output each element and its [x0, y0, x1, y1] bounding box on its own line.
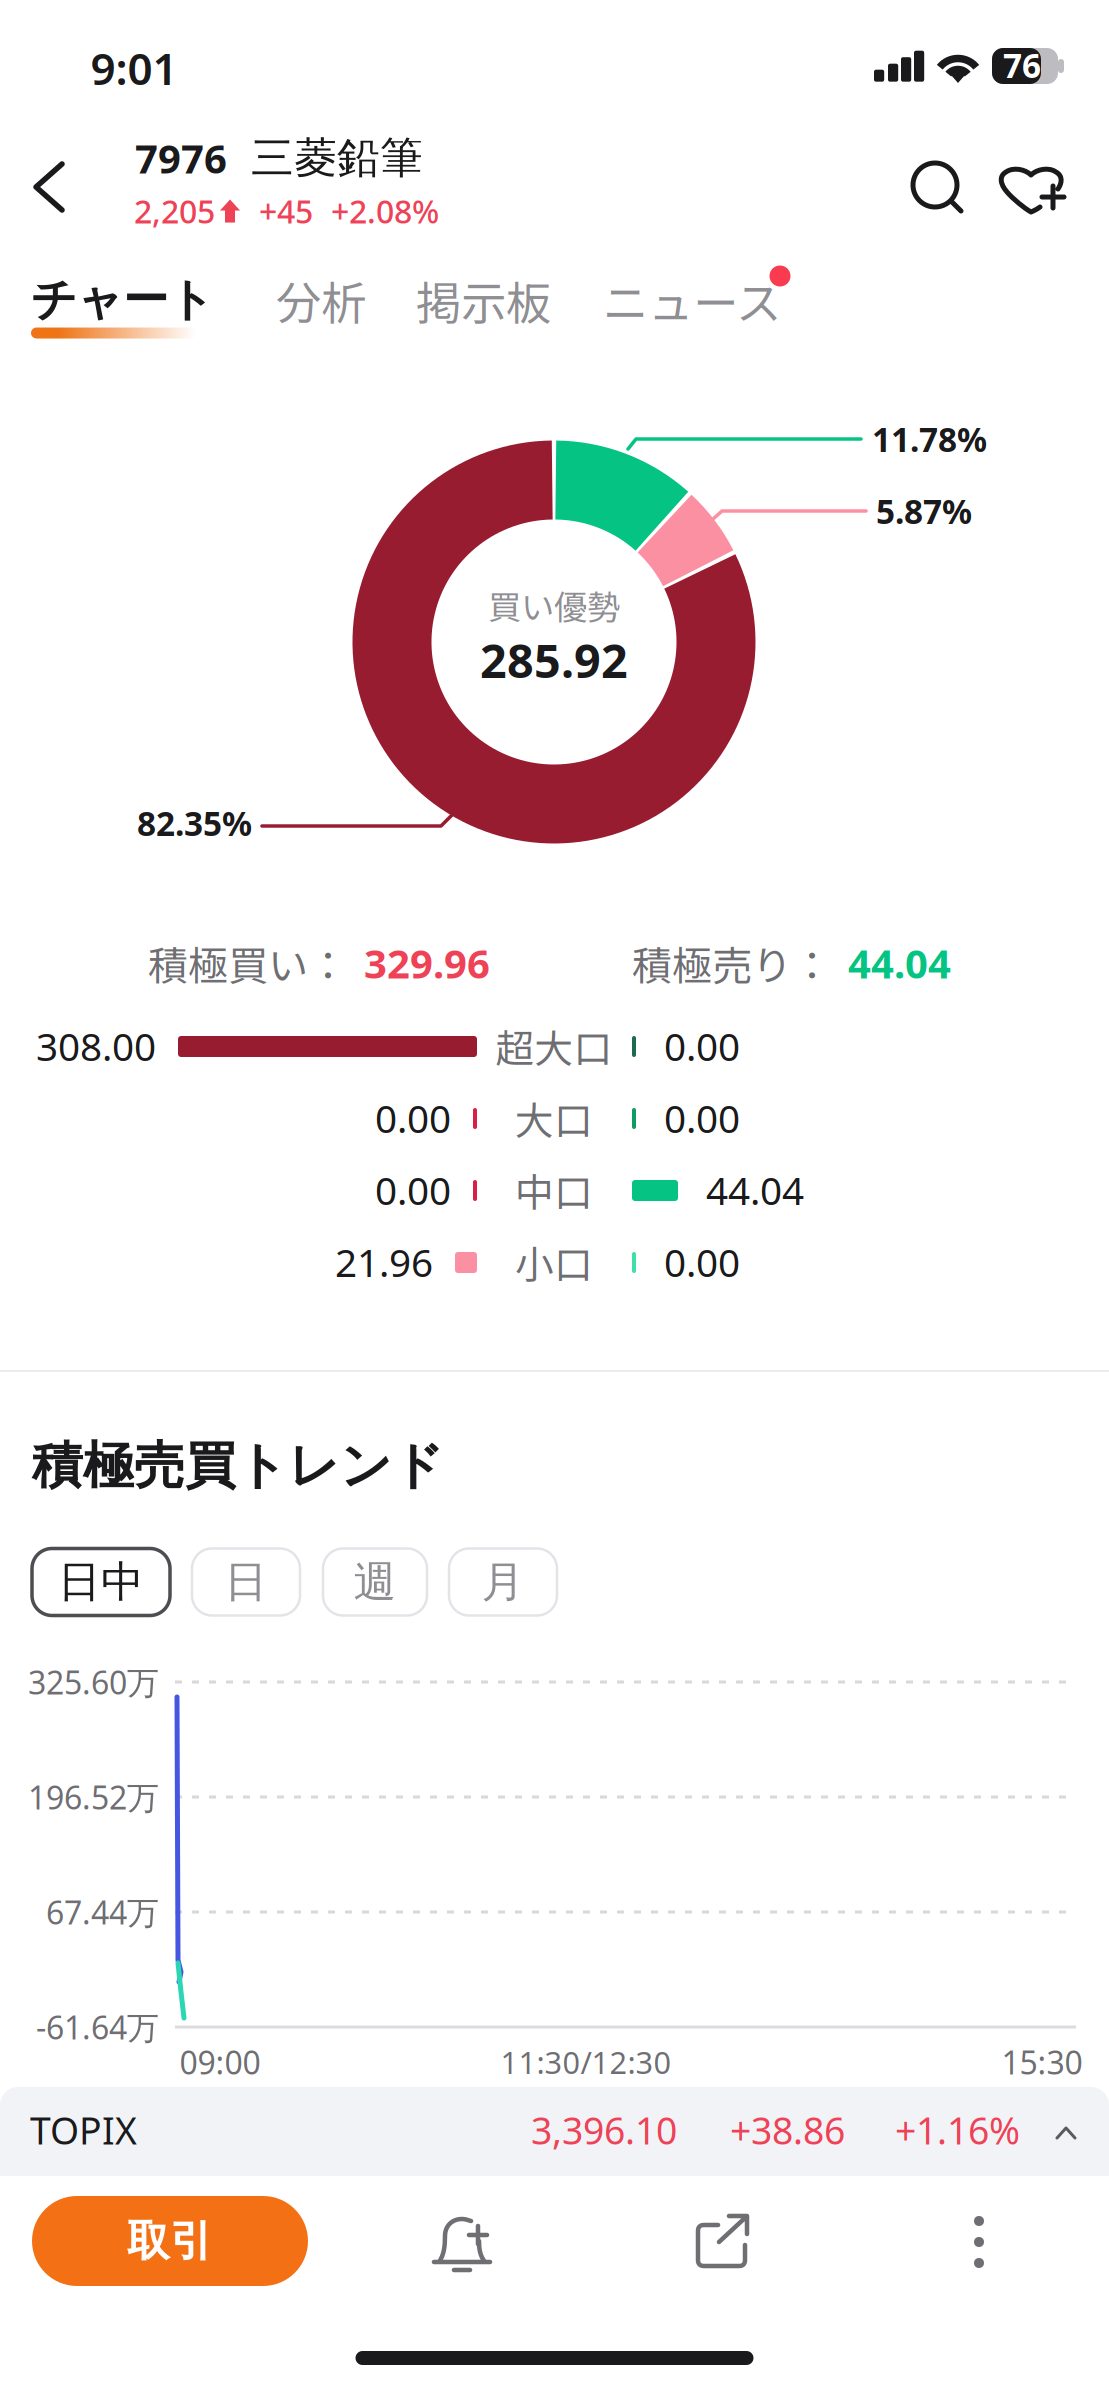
- staticText: 196.52万: [28, 1776, 159, 1818]
- button[interactable]: チャート: [0, 0, 1109, 2400]
- staticText: 2,205: [134, 190, 215, 232]
- staticText: 285.92: [480, 629, 628, 691]
- staticText: 日中: [58, 1555, 144, 1609]
- staticText: 11:30/12:30: [500, 2042, 671, 2082]
- button[interactable]: 月: [0, 0, 1109, 2400]
- staticText: 44.04: [706, 1164, 804, 1216]
- button[interactable]: 週: [0, 0, 1109, 2400]
- staticText: 中口: [515, 1162, 593, 1218]
- staticText: +1.16%: [895, 2105, 1020, 2155]
- staticText: 76: [1003, 43, 1041, 87]
- staticText: 82.35%: [137, 801, 252, 845]
- staticText: 積極買い：: [148, 934, 348, 992]
- staticText: 11.78%: [872, 417, 987, 461]
- staticText: 9:01: [90, 39, 177, 97]
- button[interactable]: その他: [0, 0, 1109, 2400]
- button[interactable]: 日中: [0, 0, 1109, 2400]
- staticText: -61.64万: [36, 2006, 159, 2048]
- staticText: 大口: [515, 1090, 593, 1146]
- staticText: 0.00: [664, 1092, 740, 1144]
- button[interactable]: お気に入りに追加: [0, 0, 1109, 2400]
- staticText: 0.00: [375, 1092, 451, 1144]
- button[interactable]: TOPIX 3,396.10 +38.86 +1.16%: [0, 0, 1109, 2400]
- button[interactable]: 日: [0, 0, 1109, 2400]
- button[interactable]: 戻る: [0, 0, 1109, 2400]
- staticText: 3,396.10: [531, 2105, 677, 2155]
- button[interactable]: 取引: [0, 0, 1109, 2400]
- button[interactable]: アラート追加: [0, 0, 1109, 2400]
- staticText: 44.04: [848, 936, 951, 989]
- staticText: 329.96: [364, 936, 490, 989]
- button[interactable]: 分析: [0, 0, 1109, 2400]
- button[interactable]: 掲示板: [0, 0, 1109, 2400]
- staticText: 週: [353, 1555, 396, 1609]
- staticText: チャート: [31, 271, 214, 328]
- staticText: 09:00: [179, 2041, 260, 2083]
- staticText: 21.96: [335, 1236, 433, 1288]
- staticText: 0.00: [375, 1164, 451, 1216]
- staticText: 分析: [276, 267, 366, 333]
- staticText: 超大口: [495, 1018, 612, 1074]
- staticText: 買い優勢: [488, 581, 620, 629]
- staticText: 取引: [127, 2214, 213, 2268]
- staticText: 0.00: [664, 1236, 740, 1288]
- staticText: TOPIX: [30, 2105, 137, 2155]
- staticText: 325.60万: [28, 1661, 159, 1703]
- staticText: 小口: [515, 1234, 593, 1290]
- staticText: ニュース: [603, 267, 781, 333]
- staticText: +38.86: [730, 2105, 845, 2155]
- button[interactable]: 共有: [0, 0, 1109, 2400]
- staticText: 0.00: [664, 1020, 740, 1072]
- staticText: 積極売買トレンド: [32, 1434, 444, 1498]
- staticText: +45: [259, 190, 313, 232]
- staticText: 5.87%: [876, 489, 972, 533]
- button[interactable]: ニュース: [0, 0, 1109, 2400]
- staticText: +2.08%: [331, 190, 439, 232]
- staticText: 67.44万: [46, 1891, 159, 1933]
- staticText: 日: [224, 1555, 267, 1609]
- staticText: 月: [481, 1555, 524, 1609]
- staticText: 7976: [135, 131, 227, 184]
- staticText: 積極売り：: [632, 934, 832, 992]
- staticText: 三菱鉛筆: [251, 131, 423, 185]
- staticText: 308.00: [36, 1020, 156, 1072]
- staticText: 15:30: [1001, 2041, 1082, 2083]
- button[interactable]: 検索: [0, 0, 1109, 2400]
- staticText: 掲示板: [416, 267, 551, 333]
